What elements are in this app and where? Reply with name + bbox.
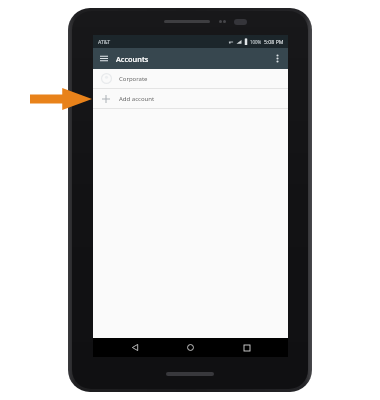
button[interactable]: Back [125,338,144,357]
staticText: 5:08 PM [264,38,284,45]
button[interactable]: Add account [93,89,288,108]
staticText: Corporate [119,75,148,83]
staticText: AT&T [98,38,111,45]
button[interactable]: Home [181,338,200,357]
staticText: 100% [250,39,262,45]
staticText: Accounts [116,54,149,64]
button[interactable]: Recent apps [237,338,256,357]
staticText: Add account [119,95,155,103]
button[interactable]: Open navigation drawer [93,48,114,69]
button[interactable]: Corporate [93,69,288,88]
button[interactable]: More options [267,48,288,69]
